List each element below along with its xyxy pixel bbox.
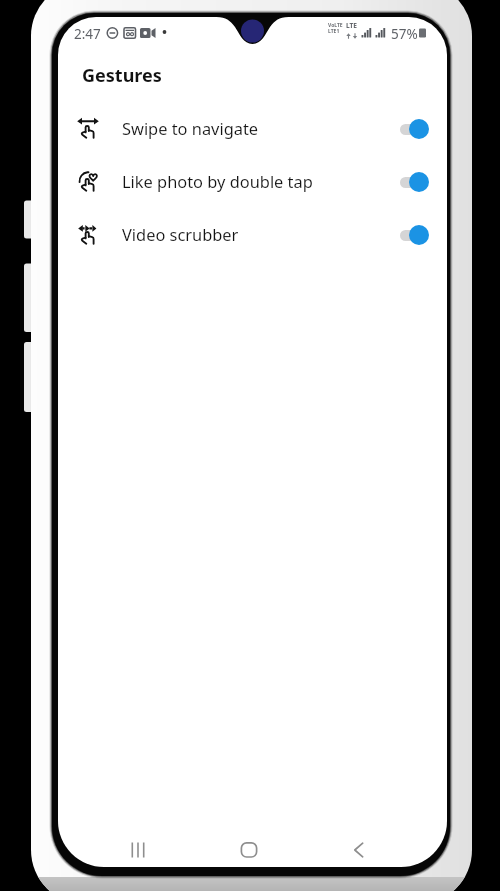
- button[interactable]: Swipe to navigate: [58, 101, 447, 154]
- staticText: VoLTE: [328, 22, 343, 29]
- staticText: Swipe to navigate: [122, 117, 259, 139]
- button[interactable]: Like photo by double tap: [58, 154, 447, 207]
- button[interactable]: Video scrubber: [58, 207, 447, 260]
- button[interactable]: [396, 222, 430, 246]
- button[interactable]: Back: [339, 830, 379, 867]
- staticText: Like photo by double tap: [122, 170, 313, 192]
- button[interactable]: Home: [229, 830, 269, 867]
- staticText: 2:47: [74, 25, 101, 43]
- button[interactable]: [396, 169, 430, 193]
- staticText: Video scrubber: [122, 223, 239, 245]
- staticText: LTE1: [328, 28, 340, 35]
- button[interactable]: Recent apps: [118, 830, 158, 867]
- button[interactable]: [396, 116, 430, 140]
- staticText: 57%: [391, 25, 418, 43]
- staticText: LTE: [346, 21, 358, 30]
- staticText: Gestures: [82, 63, 162, 88]
